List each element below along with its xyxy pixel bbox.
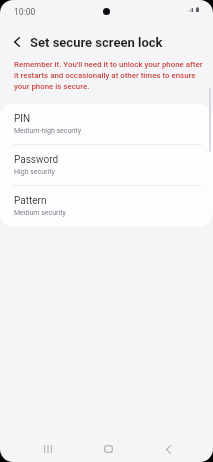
staticText: Remember it. You'll need it to unlock yo… xyxy=(14,58,206,91)
staticText: Set secure screen lock xyxy=(30,35,163,50)
button[interactable]: PIN xyxy=(0,104,213,144)
staticText: PIN xyxy=(14,113,31,125)
staticText: 10:00 xyxy=(14,7,36,17)
button[interactable]: Password xyxy=(0,145,213,185)
staticText: Medium-high security xyxy=(14,127,82,135)
staticText: Pattern xyxy=(14,195,47,207)
button[interactable]: Pattern xyxy=(0,186,213,226)
staticText: Medium security xyxy=(14,209,66,217)
button[interactable]: Recent apps xyxy=(30,431,66,462)
staticText: Password xyxy=(14,154,59,166)
button[interactable]: Home xyxy=(90,431,126,462)
button[interactable]: Back xyxy=(150,431,186,462)
button[interactable]: Navigate up xyxy=(3,28,31,56)
staticText: High security xyxy=(14,168,55,176)
